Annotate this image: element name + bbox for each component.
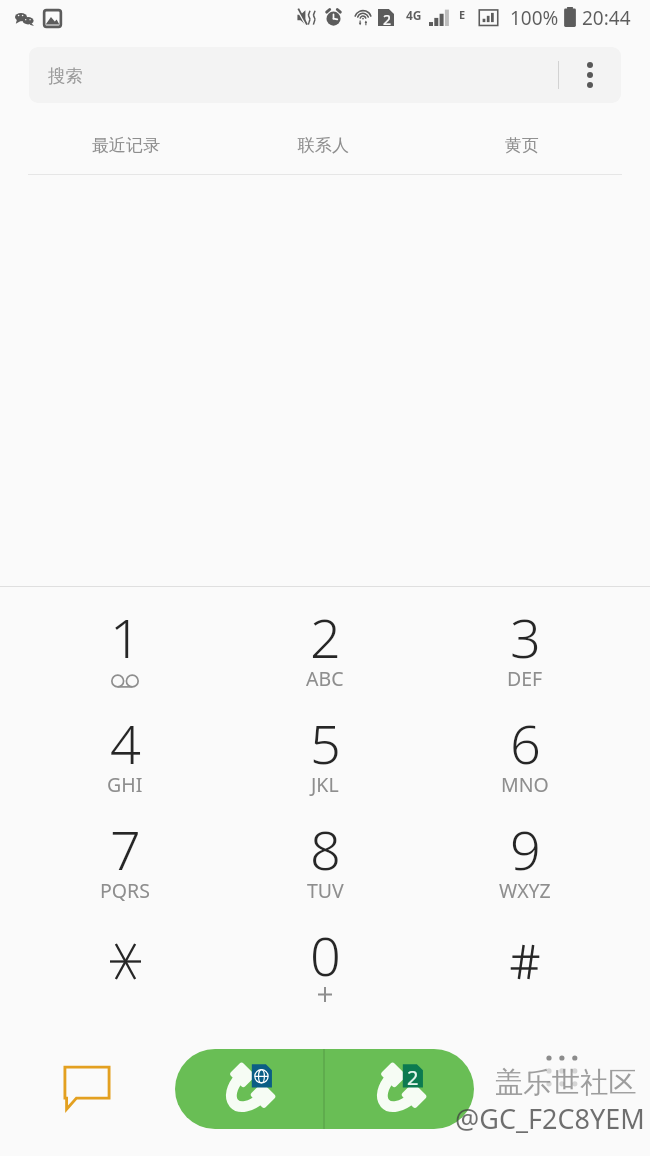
staticText: JKL [311, 771, 339, 798]
button[interactable]: Keypad [540, 1049, 583, 1091]
button[interactable]: 8 [225, 812, 425, 918]
staticText: 0 [310, 918, 341, 980]
staticText: 最近记录 [92, 135, 160, 156]
button[interactable] [425, 918, 625, 1024]
staticText: WXYZ [499, 877, 551, 904]
button[interactable]: 联系人 [233, 118, 413, 174]
staticText: 20:44 [582, 5, 631, 31]
button[interactable]: 1 [25, 600, 225, 706]
button[interactable]: 4 [25, 706, 225, 812]
button[interactable]: Call with SIM 2 [325, 1049, 474, 1129]
button[interactable]: More options [559, 47, 621, 103]
button[interactable]: 0 [225, 918, 425, 1024]
staticText: 4 [110, 706, 141, 768]
button[interactable]: 3 [425, 600, 625, 706]
button[interactable]: 搜索 [29, 47, 621, 103]
button[interactable]: 9 [425, 812, 625, 918]
staticText: 7 [110, 812, 141, 874]
staticText: 4G [406, 7, 422, 23]
staticText: 2 [407, 1064, 419, 1087]
staticText: 100% [510, 5, 559, 31]
staticText: 8 [310, 812, 341, 874]
button[interactable]: Message [63, 1065, 111, 1111]
staticText: 2 [310, 600, 341, 662]
button[interactable]: 5 [225, 706, 425, 812]
staticText: 盖乐世社区 [495, 1065, 637, 1101]
staticText: 6 [510, 706, 541, 768]
staticText: GHI [107, 771, 143, 798]
button[interactable]: 最近记录 [36, 118, 216, 174]
staticText: PQRS [100, 877, 150, 904]
button[interactable]: 2 [225, 600, 425, 706]
button[interactable]: 7 [25, 812, 225, 918]
staticText: 9 [510, 812, 541, 874]
staticText: DEF [507, 665, 543, 692]
staticText: 3 [510, 600, 541, 662]
staticText: E [459, 7, 466, 22]
staticText: TUV [307, 877, 344, 904]
staticText: 黄页 [505, 135, 539, 156]
button[interactable]: 黄页 [432, 118, 612, 174]
staticText: 1 [110, 600, 141, 662]
staticText: MNO [501, 771, 549, 798]
staticText: 联系人 [298, 135, 349, 156]
staticText: ABC [306, 665, 344, 692]
staticText: 2 [383, 10, 392, 27]
staticText: 搜索 [48, 65, 83, 87]
staticText: 5 [310, 706, 341, 768]
button[interactable]: Call with SIM 1 [175, 1049, 323, 1129]
button[interactable] [25, 918, 225, 1024]
button[interactable]: 6 [425, 706, 625, 812]
staticText: @GC_F2C8YEM [455, 1100, 645, 1137]
